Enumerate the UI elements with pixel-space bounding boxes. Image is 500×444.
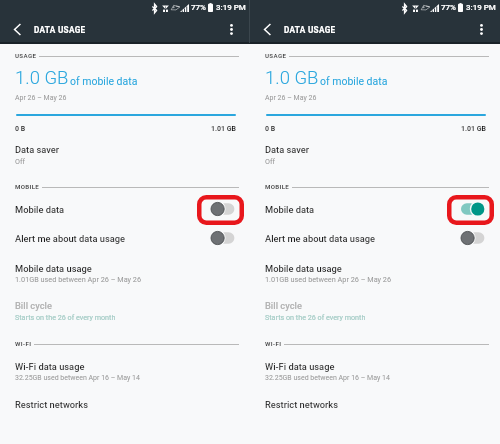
staticText: 1.01GB used between Apr 26 – May 26 <box>265 275 392 284</box>
staticText: Mobile data <box>265 204 315 215</box>
button[interactable] <box>0 138 250 168</box>
staticText: 32.25GB used between Apr 16 – May 14 <box>265 374 390 382</box>
button[interactable] <box>250 393 500 423</box>
staticText: 1.01GB used between Apr 26 – May 26 <box>15 275 142 284</box>
staticText: 32.25GB used between Apr 16 – May 14 <box>15 374 140 382</box>
staticText: 3:19 PM <box>466 3 496 12</box>
staticText: 77% <box>191 3 206 12</box>
staticText: 1.01 GB <box>136 125 236 133</box>
staticText: 1.0 GB <box>15 67 69 89</box>
staticText: Bill cycle <box>265 300 302 311</box>
staticText: 3:19 PM <box>216 3 246 12</box>
staticText: Starts on the 26 of every month <box>265 313 366 321</box>
staticText: Wi-Fi data usage <box>15 361 85 372</box>
button[interactable] <box>0 355 250 385</box>
button[interactable]: More options <box>220 17 242 41</box>
staticText: Mobile data usage <box>15 263 92 274</box>
staticText: Mobile data <box>15 204 65 215</box>
staticText: WI-FI <box>265 340 282 347</box>
staticText: Alert me about data usage <box>265 233 375 244</box>
button[interactable]: Back <box>256 17 278 41</box>
staticText: 1.0 GB <box>265 67 319 89</box>
staticText: 0 B <box>15 125 26 133</box>
button[interactable] <box>250 294 500 324</box>
staticText: MOBILE <box>265 183 290 190</box>
staticText: Restrict networks <box>265 399 339 410</box>
staticText: Mobile data usage <box>265 263 342 274</box>
button[interactable] <box>250 355 500 385</box>
staticText: USAGE <box>265 52 287 59</box>
button[interactable] <box>0 225 250 255</box>
staticText: USAGE <box>15 52 37 59</box>
button[interactable] <box>0 294 250 324</box>
staticText: of mobile data <box>70 75 138 87</box>
button[interactable] <box>0 195 250 225</box>
button[interactable] <box>250 138 500 168</box>
staticText: Starts on the 26 of every month <box>15 313 116 321</box>
staticText: Apr 26 – May 26 <box>15 94 67 102</box>
staticText: 1.01 GB <box>386 125 486 133</box>
staticText: of mobile data <box>320 75 388 87</box>
staticText: Off <box>265 157 275 165</box>
button[interactable] <box>0 257 250 287</box>
button[interactable]: Back <box>6 17 28 41</box>
staticText: Data saver <box>15 144 60 155</box>
staticText: Wi-Fi data usage <box>265 361 335 372</box>
staticText: Apr 26 – May 26 <box>265 94 317 102</box>
staticText: Alert me about data usage <box>15 233 125 244</box>
staticText: Off <box>15 157 25 165</box>
button[interactable] <box>0 393 250 423</box>
staticText: Restrict networks <box>15 399 89 410</box>
button[interactable]: More options <box>470 17 492 41</box>
staticText: Bill cycle <box>15 300 52 311</box>
staticText: DATA USAGE <box>34 25 86 35</box>
staticText: 0 B <box>265 125 276 133</box>
staticText: 77% <box>441 3 456 12</box>
staticText: MOBILE <box>15 183 40 190</box>
button[interactable] <box>250 195 500 225</box>
button[interactable] <box>250 225 500 255</box>
button[interactable] <box>250 257 500 287</box>
staticText: DATA USAGE <box>284 25 336 35</box>
staticText: WI-FI <box>15 340 32 347</box>
staticText: Data saver <box>265 144 310 155</box>
